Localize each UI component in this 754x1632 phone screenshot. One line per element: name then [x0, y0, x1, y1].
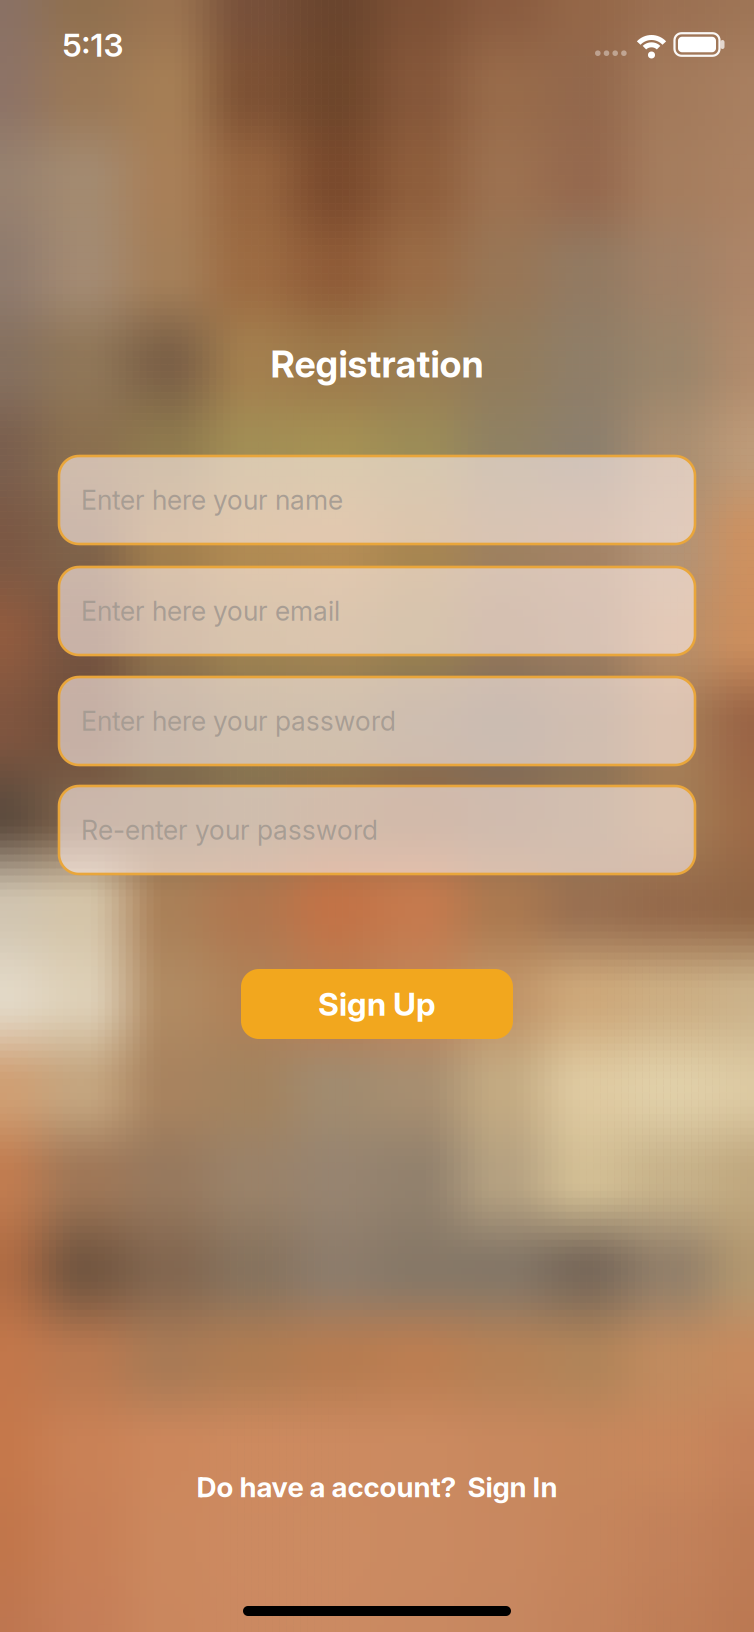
staticText: Sign Up — [318, 985, 436, 1023]
staticText: Enter here your email — [81, 595, 340, 627]
staticText: Re-enter your password — [81, 814, 378, 846]
staticText: Registration — [270, 341, 483, 387]
staticText: Do have a account? — [196, 1470, 456, 1504]
staticText: Enter here your password — [81, 705, 396, 737]
button[interactable]: Enter here your password — [59, 677, 695, 765]
button[interactable]: Re-enter your password — [59, 786, 695, 874]
staticText: 5:13 — [62, 26, 123, 64]
button[interactable]: Sign Up — [241, 969, 513, 1039]
staticText: Sign In — [467, 1470, 557, 1504]
staticText: Enter here your name — [81, 484, 343, 516]
button[interactable]: Enter here your email — [59, 567, 695, 655]
button[interactable]: Enter here your name — [59, 456, 695, 544]
button[interactable]: Sign In — [467, 1470, 557, 1504]
